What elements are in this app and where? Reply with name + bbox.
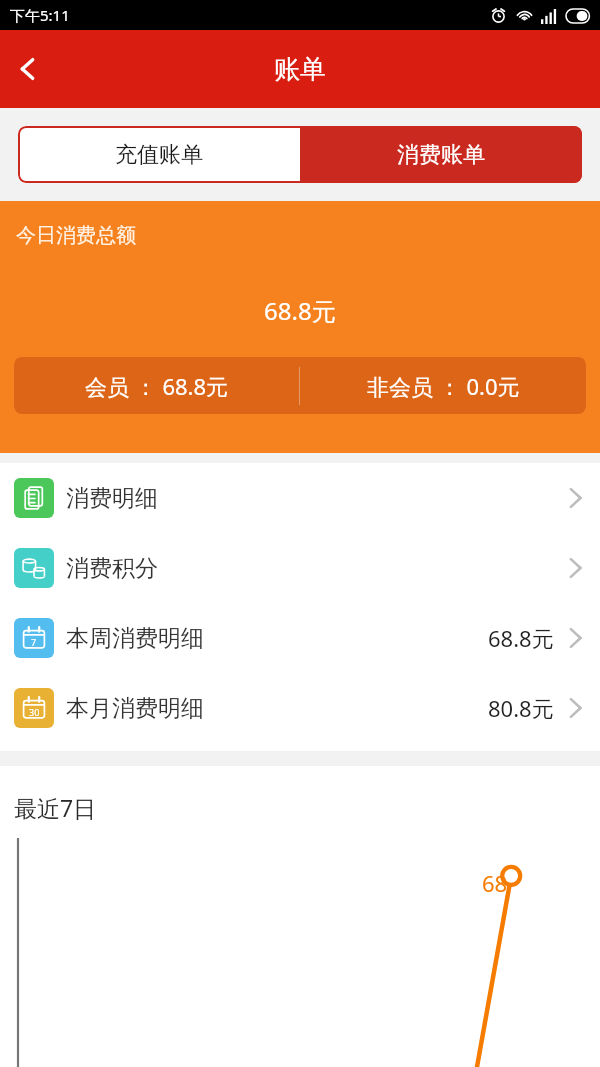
- button[interactable]: Back: [0, 41, 56, 97]
- staticText: 68: [482, 868, 508, 898]
- staticText: 充值账单: [115, 141, 203, 169]
- staticText: 消费账单: [397, 141, 485, 169]
- staticText: 68.8元: [264, 294, 336, 327]
- staticText: 今日消费总额: [16, 223, 136, 248]
- staticText: 会员 ： 68.8元: [85, 371, 229, 401]
- staticText: 7: [31, 636, 37, 648]
- staticText: 最近7日: [14, 792, 97, 823]
- staticText: 30: [29, 706, 40, 718]
- staticText: 消费积分: [66, 554, 158, 583]
- button[interactable]: 充值账单: [18, 126, 300, 183]
- button[interactable]: 7: [0, 603, 600, 673]
- button[interactable]: 消费明细: [0, 463, 600, 533]
- staticText: 非会员 ： 0.0元: [367, 371, 520, 401]
- staticText: 账单: [274, 53, 326, 86]
- staticText: 本月消费明细: [66, 694, 204, 723]
- staticText: 80.8元: [488, 693, 554, 723]
- button[interactable]: 30: [0, 673, 600, 743]
- staticText: 消费明细: [66, 484, 158, 513]
- button[interactable]: 消费积分: [0, 533, 600, 603]
- button[interactable]: 消费账单: [300, 126, 582, 183]
- staticText: 下午5:11: [10, 5, 70, 25]
- staticText: 68.8元: [488, 623, 554, 653]
- staticText: 本周消费明细: [66, 624, 204, 653]
